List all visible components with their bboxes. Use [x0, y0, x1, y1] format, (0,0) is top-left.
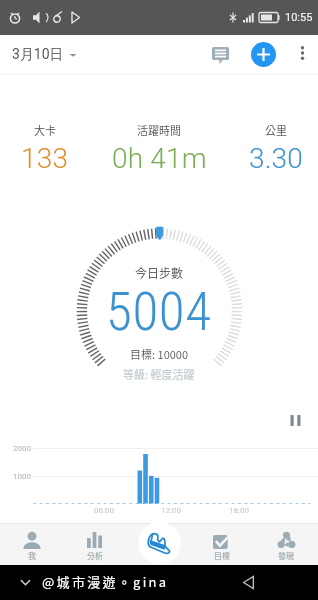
button[interactable]: Add	[251, 42, 276, 67]
staticText: 2000	[13, 444, 31, 453]
button[interactable]: Activity	[138, 522, 181, 564]
staticText: 發現	[278, 550, 294, 562]
staticText: 06:00	[94, 506, 114, 515]
staticText: 133	[21, 142, 69, 175]
staticText: 18:00	[229, 506, 249, 515]
staticText: 今日步數	[135, 264, 184, 281]
button[interactable]: Back	[237, 571, 260, 594]
staticText: 3.30	[249, 142, 304, 175]
staticText: 活躍時間	[137, 122, 181, 138]
staticText: 12:00	[161, 506, 181, 515]
staticText: 大卡	[34, 122, 56, 138]
staticText: 公里	[265, 122, 287, 138]
staticText: 目標: 10000	[130, 346, 189, 362]
button[interactable]: 發現	[254, 523, 318, 565]
button[interactable]: 我	[0, 523, 63, 565]
staticText: 目標	[214, 550, 230, 562]
staticText: 我	[28, 550, 36, 562]
button[interactable]: More options	[290, 41, 314, 65]
button[interactable]: Messages	[206, 41, 234, 69]
button[interactable]: 分析	[63, 523, 126, 565]
staticText: 等級: 輕度活躍	[123, 366, 195, 382]
staticText: 5004	[106, 281, 212, 343]
staticText: 分析	[87, 550, 103, 562]
button[interactable]: 目標	[190, 523, 254, 565]
button[interactable]: Pause	[284, 409, 307, 432]
staticText: @城市漫遊。gina	[42, 572, 169, 591]
staticText: 3月10日	[12, 46, 64, 64]
staticText: 0h 41m	[112, 142, 207, 175]
button[interactable]: 大卡	[0, 122, 105, 175]
button[interactable]: 活躍時間	[99, 122, 219, 175]
button[interactable]: 3月10日	[11, 40, 78, 70]
staticText: 1000	[13, 472, 31, 481]
button[interactable]: 公里	[216, 122, 318, 175]
staticText: 10:55	[285, 11, 313, 24]
